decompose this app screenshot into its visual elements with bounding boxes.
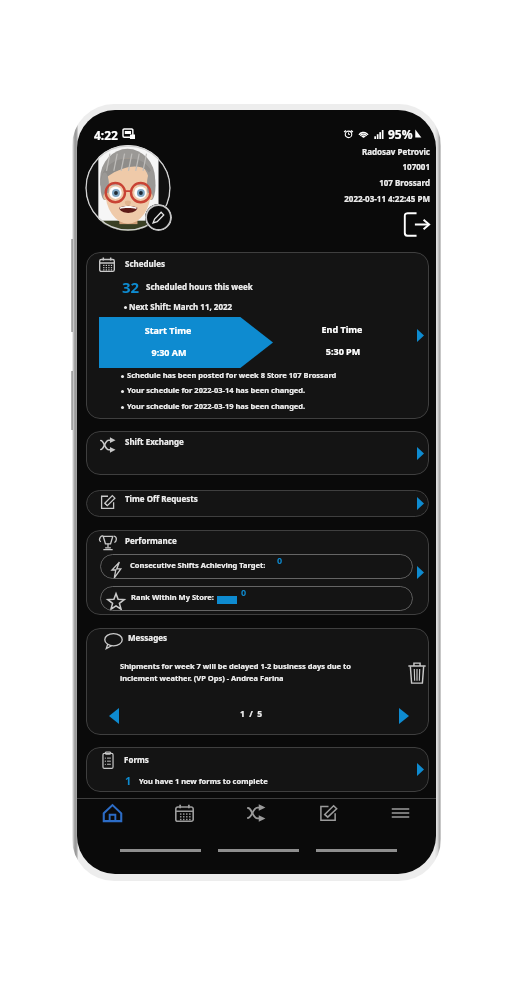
- staticText: Performance: [125, 535, 177, 546]
- button[interactable]: Edit photo: [145, 204, 172, 231]
- button[interactable]: Shift Exchange: [220, 799, 292, 827]
- staticText: 107 Brossard: [379, 177, 430, 188]
- staticText: Rank Within My Store:: [131, 592, 214, 602]
- button[interactable]: Home: [77, 799, 148, 827]
- staticText: inclement weather. (VP Ops) - Andrea Far…: [120, 673, 284, 683]
- staticText: 2022-03-11 4:22:45 PM: [344, 193, 430, 204]
- button[interactable]: Delete message: [403, 659, 429, 687]
- staticText: Shift Exchange: [125, 436, 184, 447]
- staticText: 0: [277, 554, 283, 566]
- staticText: Radosav Petrovic: [361, 146, 430, 157]
- button[interactable]: Messages: [86, 628, 429, 735]
- button[interactable]: Log out: [400, 210, 431, 238]
- staticText: Schedule has been posted for week 8 Stor…: [127, 370, 337, 380]
- button[interactable]: Previous message: [101, 703, 127, 729]
- staticText: Forms: [124, 754, 149, 765]
- button[interactable]: Next message: [391, 703, 417, 729]
- staticText: Your schedule for 2022-03-14 has been ch…: [127, 385, 306, 395]
- button[interactable]: Schedule: [148, 799, 220, 827]
- staticText: 95%: [388, 126, 413, 142]
- button[interactable]: Forms: [86, 747, 429, 792]
- staticText: Time Off Requests: [125, 493, 198, 504]
- staticText: Messages: [128, 632, 167, 643]
- staticText: Your schedule for 2022-03-19 has been ch…: [127, 401, 306, 411]
- staticText: 5:30 PM: [283, 345, 403, 357]
- staticText: 4:22: [94, 127, 118, 143]
- button[interactable]: Performance: [86, 530, 429, 615]
- button[interactable]: Time Off Requests: [86, 490, 429, 517]
- staticText: 32: [122, 277, 140, 297]
- staticText: Next Shift: March 11, 2022: [129, 301, 233, 312]
- button[interactable]: Menu: [364, 799, 436, 827]
- staticText: You have 1 new forms to complete: [139, 776, 268, 786]
- button[interactable]: Shift Exchange: [86, 431, 429, 475]
- button[interactable]: Consecutive Shifts Achieving Target:: [100, 554, 413, 579]
- button[interactable]: Schedules: [86, 252, 429, 419]
- staticText: Start Time: [108, 324, 228, 336]
- staticText: 0: [241, 586, 247, 598]
- staticText: End Time: [282, 323, 402, 335]
- staticText: 1: [125, 773, 132, 788]
- staticText: 1 / 5: [191, 708, 311, 720]
- button[interactable]: Rank Within My Store:: [100, 586, 413, 611]
- staticText: 107001: [402, 161, 430, 172]
- button[interactable]: Time Off Requests: [292, 799, 364, 827]
- button[interactable]: Profile photo: [85, 145, 171, 231]
- staticText: Shipments for week 7 will be delayed 1-2…: [120, 661, 351, 671]
- staticText: Scheduled hours this week: [146, 281, 253, 292]
- staticText: 9:30 AM: [109, 346, 229, 358]
- staticText: Schedules: [125, 258, 165, 269]
- staticText: Consecutive Shifts Achieving Target:: [130, 560, 266, 570]
